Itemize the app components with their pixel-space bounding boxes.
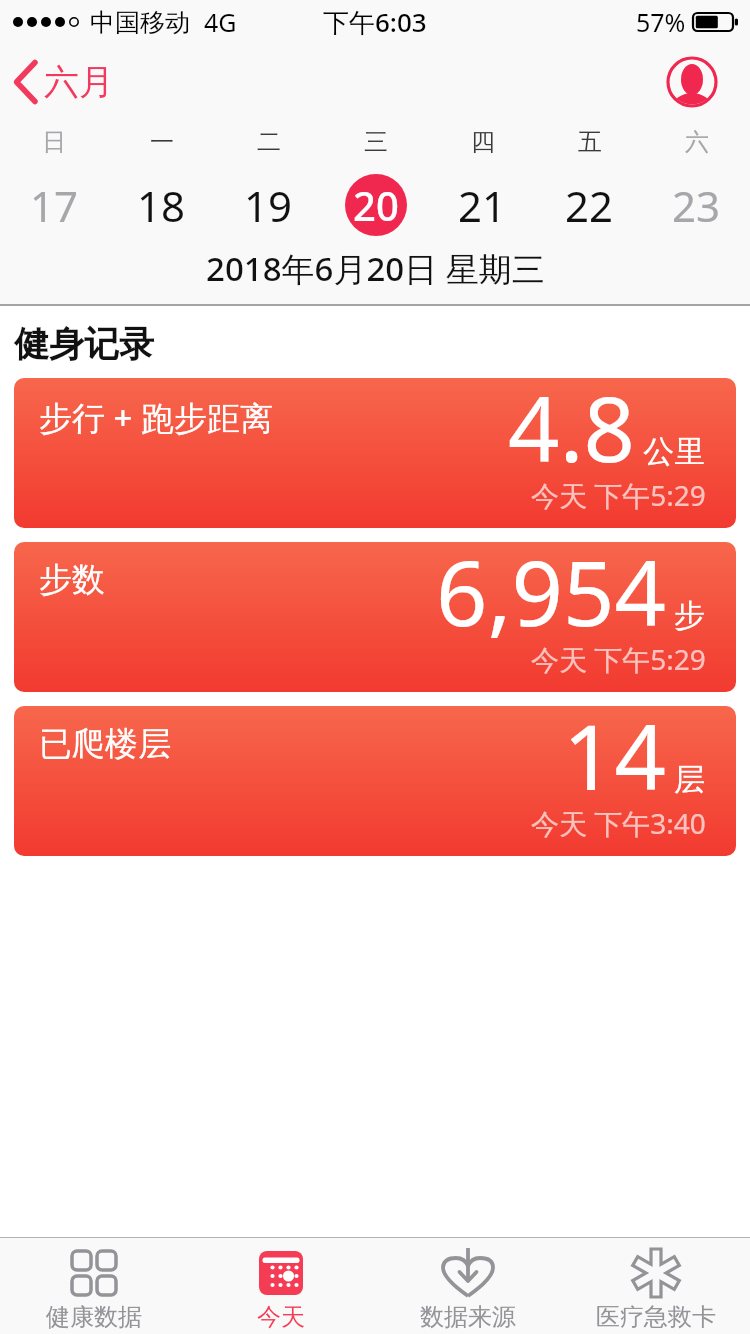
button[interactable]: 今天: [187, 1238, 374, 1334]
button[interactable]: 步数: [14, 542, 736, 692]
staticText: 21: [458, 177, 507, 234]
staticText: 今天 下午3:40: [531, 804, 706, 842]
staticText: 二: [257, 127, 281, 157]
button[interactable]: 医疗急救卡: [562, 1238, 750, 1334]
staticText: 步数: [39, 559, 105, 601]
button[interactable]: 21: [429, 164, 536, 246]
staticText: 今天: [257, 1302, 305, 1332]
staticText: 2018年6月20日 星期三: [206, 246, 545, 290]
staticText: 14 层: [563, 706, 706, 817]
button[interactable]: 数据来源: [374, 1238, 562, 1334]
staticText: 18: [137, 177, 186, 234]
button[interactable]: 六月: [14, 60, 114, 104]
staticText: 23: [672, 177, 721, 234]
staticText: 19: [244, 177, 293, 234]
button[interactable]: 22: [536, 164, 643, 246]
staticText: 一: [150, 127, 174, 157]
button[interactable]: [666, 56, 718, 108]
staticText: 六: [685, 127, 709, 157]
button[interactable]: 已爬楼层: [14, 706, 736, 856]
button[interactable]: 23: [643, 164, 750, 246]
button[interactable]: 19: [215, 164, 322, 246]
staticText: 17: [30, 177, 79, 234]
staticText: 下午6:03: [323, 4, 427, 40]
button[interactable]: 20: [322, 164, 429, 246]
button[interactable]: 17: [0, 164, 108, 246]
staticText: 数据来源: [420, 1302, 516, 1332]
staticText: 日: [42, 127, 66, 157]
staticText: 4.8 公里: [508, 378, 706, 489]
staticText: 22: [565, 177, 614, 234]
staticText: 六月: [44, 60, 114, 104]
staticText: 五: [578, 127, 602, 157]
staticText: 中国移动: [90, 7, 190, 38]
button[interactable]: 18: [108, 164, 215, 246]
staticText: 57%: [636, 5, 686, 39]
staticText: 健身记录: [14, 322, 154, 366]
staticText: 健康数据: [46, 1302, 142, 1332]
button[interactable]: 步行 + 跑步距离: [14, 378, 736, 528]
staticText: 三: [364, 127, 388, 157]
staticText: 步行 + 跑步距离: [39, 395, 274, 440]
staticText: 今天 下午5:29: [531, 476, 706, 514]
staticText: 四: [471, 127, 495, 157]
button[interactable]: 健康数据: [0, 1238, 187, 1334]
staticText: 20: [353, 178, 399, 232]
staticText: 医疗急救卡: [596, 1302, 716, 1332]
staticText: 已爬楼层: [39, 723, 171, 765]
staticText: 今天 下午5:29: [531, 640, 706, 678]
staticText: 6,954 步: [436, 542, 706, 653]
staticText: 4G: [204, 5, 237, 39]
